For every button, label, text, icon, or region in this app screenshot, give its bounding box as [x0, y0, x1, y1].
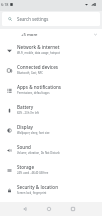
button[interactable]: Sound	[0, 140, 102, 160]
staticText: Wallpaper, sleep, font size	[17, 131, 50, 135]
button[interactable]: Home	[37, 202, 61, 216]
staticText: Security & location	[17, 184, 59, 190]
button[interactable]: +5 more	[0, 29, 102, 40]
button[interactable]: Display	[0, 120, 102, 140]
staticText: Wi-Fi, mobile, data usage, hotspot	[17, 51, 60, 55]
staticText: Volume, vibration, Do Not Disturb	[17, 151, 60, 155]
staticText: Connected devices	[17, 64, 58, 70]
staticText: Display	[17, 124, 33, 130]
button[interactable]: Apps & notifications	[0, 80, 102, 100]
button[interactable]: Recents	[61, 202, 85, 216]
staticText: Sound	[17, 144, 31, 150]
button[interactable]: Connected devices	[0, 60, 102, 80]
button[interactable]: Battery	[0, 100, 102, 120]
staticText: Permissions, default apps	[17, 91, 50, 95]
staticText: Apps & notifications	[17, 84, 62, 90]
staticText: Screen lock, fingerprint	[17, 191, 47, 195]
staticText: +5 more	[21, 32, 38, 38]
button[interactable]: Security & location	[0, 180, 102, 200]
button[interactable]: Network & internet	[0, 40, 102, 60]
button[interactable]: Search settings	[2, 12, 100, 26]
staticText: 6:18	[1, 2, 9, 7]
staticText: Bluetooth, Cast, NFC	[17, 71, 43, 75]
button[interactable]: Back	[13, 202, 37, 216]
staticText: 24% used - 48.40 GB free	[17, 171, 49, 175]
staticText: Network & internet	[17, 44, 60, 50]
button[interactable]: Storage	[0, 160, 102, 180]
staticText: 82% - 23h 7m left	[17, 111, 39, 115]
staticText: Search settings	[17, 16, 49, 22]
staticText: Battery	[17, 104, 34, 110]
staticText: Storage	[17, 164, 35, 170]
